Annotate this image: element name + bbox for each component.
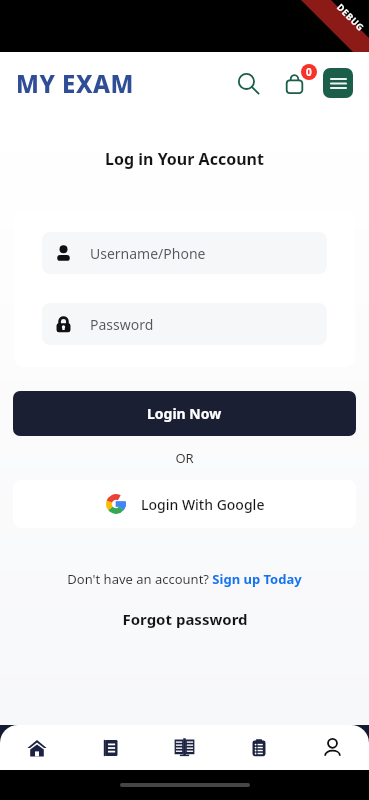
button[interactable]: Login With Google — [13, 480, 356, 528]
staticText: DEBUG — [335, 1, 367, 33]
staticText: Username/Phone — [90, 244, 206, 263]
staticText: Log in Your Account — [0, 148, 369, 170]
button[interactable]: Menu — [323, 68, 353, 98]
staticText: Password — [90, 315, 154, 334]
staticText: Forgot password — [122, 609, 248, 629]
staticText: MY EXAM — [16, 67, 134, 100]
button[interactable]: Login Now — [13, 391, 356, 436]
staticText: 0 — [306, 65, 312, 79]
staticText: Don't have an account? Sign up Today — [67, 570, 302, 588]
staticText: OR — [0, 449, 369, 467]
button[interactable]: Search — [230, 65, 266, 101]
button[interactable]: Profile — [295, 725, 369, 770]
button[interactable]: Username/Phone — [42, 232, 327, 274]
button[interactable]: Cart — [274, 63, 314, 103]
button[interactable]: Forgot password — [0, 609, 369, 629]
button[interactable]: Don't have an account? Sign up Today — [0, 570, 369, 588]
button[interactable]: Password — [42, 303, 327, 345]
button[interactable]: Courses — [73, 725, 147, 770]
button[interactable]: Library — [147, 725, 221, 770]
staticText: Login With Google — [141, 495, 265, 514]
button[interactable]: Tests — [221, 725, 295, 770]
staticText: Login Now — [147, 404, 222, 423]
button[interactable]: Home — [0, 725, 73, 770]
